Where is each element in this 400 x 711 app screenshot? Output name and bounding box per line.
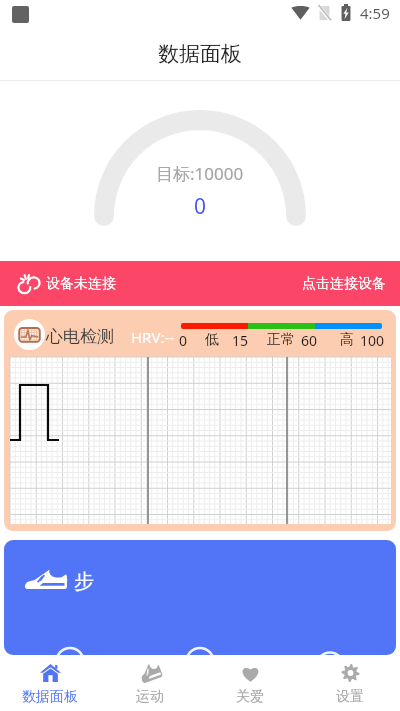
staticText: 运动: [136, 688, 164, 706]
button[interactable]: 设置: [300, 655, 400, 711]
button[interactable]: 运动: [100, 655, 200, 711]
staticText: 60: [301, 331, 318, 350]
staticText: 数据面板: [22, 688, 78, 706]
staticText: 关爱: [236, 688, 264, 706]
staticText: 100: [360, 331, 385, 350]
staticText: 高: [340, 331, 354, 349]
button[interactable]: 设备未连接: [0, 261, 400, 306]
staticText: 正常: [267, 331, 295, 349]
staticText: 目标:10000: [156, 162, 244, 185]
button[interactable]: 心电检测: [4, 310, 396, 531]
staticText: 设备未连接: [46, 275, 116, 293]
staticText: HRV:--: [131, 327, 175, 347]
staticText: 数据面板: [158, 41, 242, 67]
staticText: 设置: [336, 688, 364, 706]
staticText: 15: [232, 331, 249, 350]
button[interactable]: 步: [4, 540, 396, 655]
button[interactable]: 数据面板: [0, 655, 100, 711]
other: 设备未连接: [18, 274, 40, 294]
staticText: 4:59: [360, 3, 390, 23]
staticText: 0: [179, 331, 188, 350]
staticText: 低: [205, 331, 219, 349]
staticText: 心电检测: [46, 326, 114, 347]
staticText: 0: [194, 192, 207, 221]
staticText: 点击连接设备: [302, 275, 386, 293]
staticText: 步: [74, 569, 94, 594]
button[interactable]: 关爱: [200, 655, 300, 711]
